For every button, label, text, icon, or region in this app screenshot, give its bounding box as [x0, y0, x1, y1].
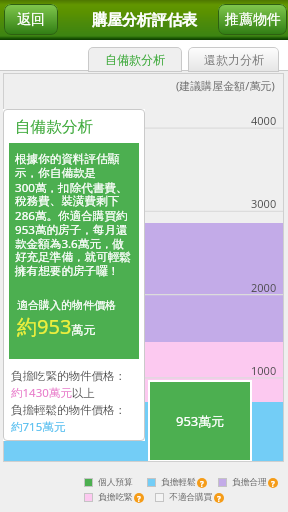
staticText: 約953萬元 [17, 313, 96, 340]
staticText: 4000 [251, 113, 277, 128]
staticText: 不適合購買 [169, 492, 213, 503]
other: 說明 [197, 478, 207, 488]
staticText: 953萬元 [176, 412, 225, 430]
staticText: 1000 [251, 363, 277, 378]
button[interactable]: 自備款分析 [88, 47, 182, 72]
staticText: 還款力分析 [204, 52, 264, 67]
button[interactable]: 返回 [4, 4, 58, 35]
button[interactable]: 還款力分析 [188, 47, 279, 72]
button[interactable]: 負擔輕鬆 [147, 477, 207, 488]
staticText: 負擔吃緊的物件價格： 約1430萬元以上 負擔輕鬆的物件價格： 約715萬元 [11, 369, 126, 435]
staticText: 適合購入的物件價格 [17, 298, 116, 312]
button[interactable]: 953萬元 [150, 382, 250, 460]
staticText: 3000 [251, 196, 277, 211]
staticText: ? [200, 478, 204, 488]
staticText: ? [137, 493, 141, 503]
staticText: 個人預算 [98, 477, 133, 488]
staticText: 自備款分析 [15, 117, 93, 137]
staticText: 推薦物件 [225, 11, 281, 29]
other: 說明 [134, 493, 144, 503]
button[interactable]: 不適合購買 [155, 492, 224, 503]
other: 說明 [214, 493, 224, 503]
staticText: ? [271, 478, 275, 488]
staticText: 負擔輕鬆 [161, 477, 196, 488]
staticText: 自備款分析 [105, 52, 165, 67]
staticText: 返回 [17, 11, 45, 29]
staticText: 2000 [251, 280, 277, 295]
button[interactable]: 個人預算 [84, 477, 133, 488]
staticText: 負擔合理 [232, 477, 267, 488]
button[interactable]: 負擔吃緊 [84, 492, 144, 503]
staticText: 購屋分析評估表 [92, 11, 197, 30]
button[interactable]: 推薦物件 [218, 4, 287, 35]
button[interactable]: 負擔合理 [218, 477, 278, 488]
staticText: (建議購屋金額/萬元) [176, 78, 275, 93]
staticText: 負擔吃緊 [98, 492, 133, 503]
staticText: 根據你的資料評估顯 示，你自備款是 300萬，扣除代書費、 稅務費、裝潢費剩下 … [15, 152, 131, 279]
other: 說明 [268, 478, 278, 488]
staticText: ? [217, 493, 221, 503]
